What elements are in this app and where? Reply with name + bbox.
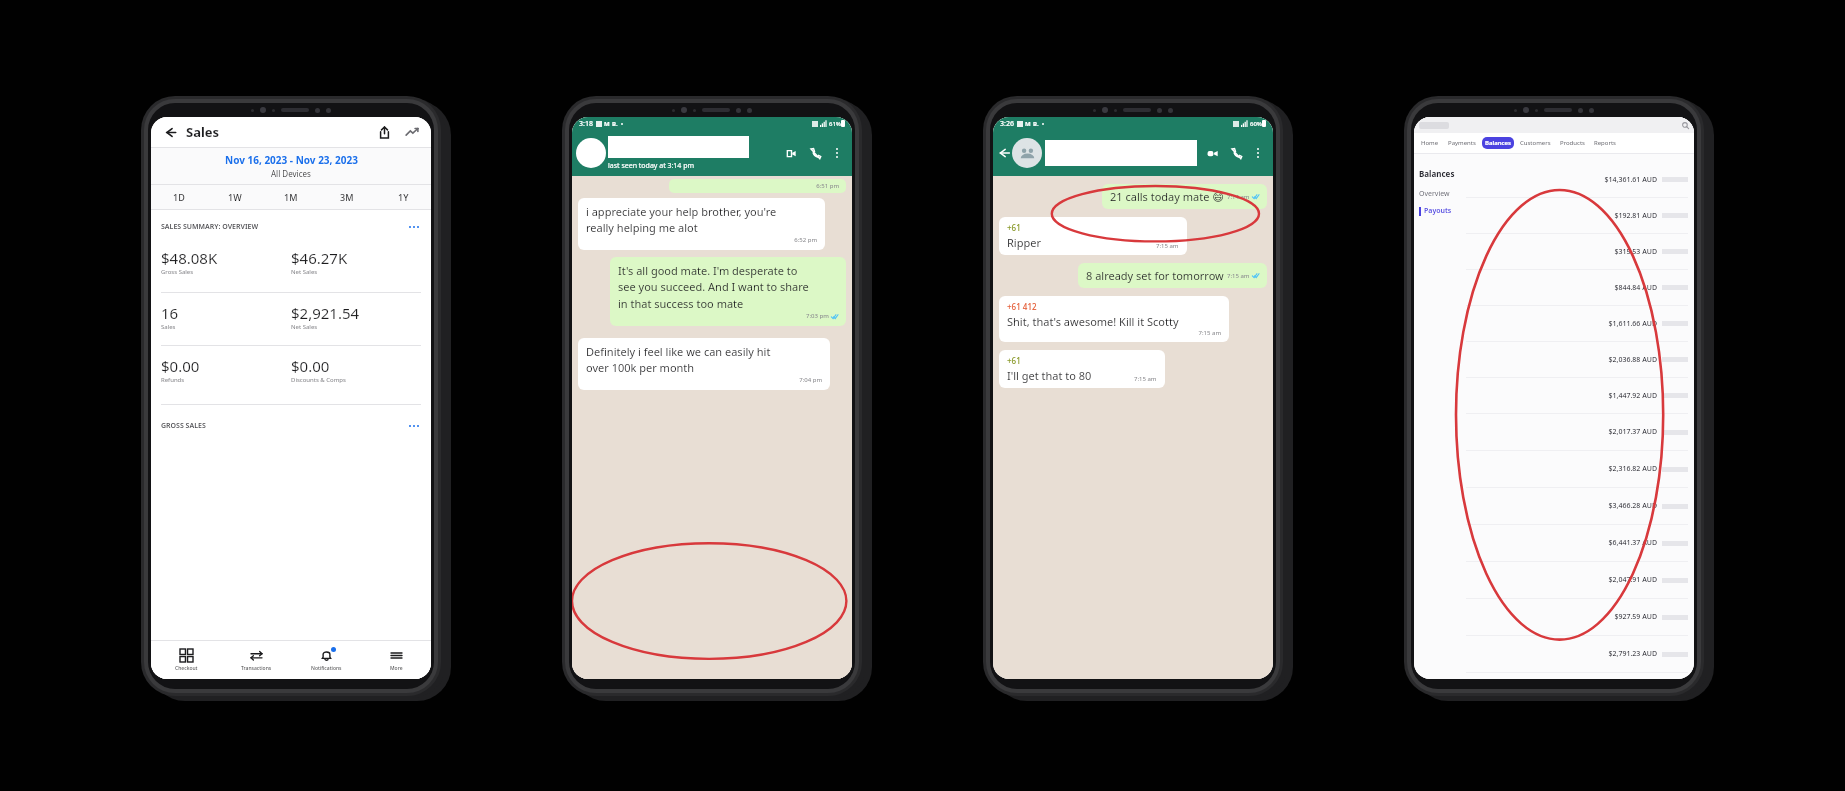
staticText: $0.00 bbox=[161, 356, 200, 376]
staticText: $2,791.23 AUD bbox=[1466, 649, 1657, 659]
button[interactable]: Payouts bbox=[1419, 206, 1466, 216]
button[interactable]: Contact avatar bbox=[576, 138, 606, 168]
staticText: 6:52 pm bbox=[586, 236, 817, 244]
staticText: $1,447.92 AUD bbox=[1466, 391, 1657, 401]
staticText: $14,361.61 AUD bbox=[1466, 175, 1657, 185]
button[interactable]: Reports bbox=[1591, 137, 1619, 149]
staticText: i appreciate your help brother, you're r… bbox=[586, 204, 777, 236]
staticText: $0.00 bbox=[291, 356, 330, 376]
button[interactable]: 1W bbox=[207, 185, 263, 209]
button[interactable]: +61 bbox=[999, 217, 1187, 255]
staticText: Ripper bbox=[1007, 235, 1041, 250]
staticText: $2,047.91 AUD bbox=[1466, 575, 1657, 585]
button[interactable]: Share bbox=[374, 122, 394, 142]
button[interactable]: $3,466.28 AUD bbox=[1466, 488, 1688, 524]
button[interactable]: Back bbox=[160, 122, 180, 142]
staticText: M bbox=[1025, 120, 1031, 128]
button[interactable]: $192.81 AUD bbox=[1466, 198, 1688, 233]
button[interactable]: Products bbox=[1557, 137, 1588, 149]
button[interactable]: $315.53 AUD bbox=[1466, 234, 1688, 269]
staticText: B. bbox=[1033, 120, 1039, 128]
staticText: Shit, that's awesome! Kill it Scotty bbox=[1007, 314, 1179, 329]
staticText: $2,316.82 AUD bbox=[1466, 464, 1657, 474]
button[interactable]: $844.84 AUD bbox=[1466, 270, 1688, 305]
button[interactable]: Transactions bbox=[221, 641, 291, 679]
button[interactable]: 1Y bbox=[375, 185, 431, 209]
button[interactable]: Checkout bbox=[151, 641, 221, 679]
button[interactable]: 21 calls today mate 😄 bbox=[1102, 184, 1267, 209]
button[interactable]: Trends bbox=[402, 122, 422, 142]
button[interactable]: 6:51 pm bbox=[669, 179, 846, 193]
staticText: $192.81 AUD bbox=[1466, 211, 1657, 221]
button[interactable]: It's all good mate. I'm desperate to see… bbox=[610, 257, 846, 326]
button[interactable]: Definitely i feel like we can easily hit… bbox=[578, 338, 830, 390]
staticText: 3M bbox=[340, 191, 354, 203]
staticText: 16 bbox=[161, 303, 179, 323]
staticText: $2,921.54 bbox=[291, 303, 360, 323]
button[interactable]: $1,447.92 AUD bbox=[1466, 378, 1688, 413]
staticText: I'll get that to 80 bbox=[1007, 368, 1092, 383]
button[interactable]: More options bbox=[407, 220, 421, 234]
button[interactable]: $14,361.61 AUD bbox=[1466, 162, 1688, 197]
staticText: $927.59 AUD bbox=[1466, 612, 1657, 622]
button[interactable]: Video call bbox=[780, 142, 802, 164]
button[interactable]: 1D bbox=[151, 185, 207, 209]
button[interactable]: $2,047.91 AUD bbox=[1466, 562, 1688, 598]
staticText: SALES SUMMARY: OVERVIEW bbox=[161, 222, 259, 232]
button[interactable]: 8 already set for tomorrow bbox=[1078, 263, 1267, 288]
staticText: $315.53 AUD bbox=[1466, 247, 1657, 257]
button[interactable]: +61 412 bbox=[999, 296, 1229, 342]
button[interactable]: Call bbox=[1225, 142, 1247, 164]
staticText: $844.84 AUD bbox=[1466, 283, 1657, 293]
staticText: 7:14 am bbox=[1227, 193, 1250, 201]
button[interactable]: Home bbox=[1418, 137, 1442, 149]
button[interactable]: Call bbox=[804, 142, 826, 164]
button[interactable]: More bbox=[361, 641, 431, 679]
button[interactable]: Back bbox=[996, 145, 1012, 161]
button[interactable]: $6,441.37 AUD bbox=[1466, 525, 1688, 561]
staticText: 7:04 pm bbox=[586, 376, 822, 384]
button[interactable]: Video call bbox=[1201, 142, 1223, 164]
staticText: Reports bbox=[1594, 139, 1616, 147]
staticText: Home bbox=[1421, 139, 1439, 147]
button[interactable]: $2,036.88 AUD bbox=[1466, 342, 1688, 377]
button[interactable]: Payments bbox=[1445, 137, 1479, 149]
staticText: 8 already set for tomorrow bbox=[1086, 268, 1224, 283]
button[interactable]: Nov 16, 2023 - Nov 23, 2023 bbox=[151, 148, 431, 184]
staticText: Products bbox=[1560, 139, 1585, 147]
button[interactable]: +61 bbox=[999, 350, 1165, 388]
button[interactable]: $2,316.82 AUD bbox=[1466, 451, 1688, 487]
staticText: 7:15 am bbox=[1227, 272, 1250, 280]
button[interactable]: 1M bbox=[263, 185, 319, 209]
button[interactable]: 3M bbox=[319, 185, 375, 209]
button[interactable]: $1,611.66 AUD bbox=[1466, 306, 1688, 341]
staticText: 60% bbox=[1250, 120, 1262, 128]
staticText: $48.08K bbox=[161, 248, 218, 268]
staticText: All Devices bbox=[271, 168, 311, 179]
button[interactable]: $927.59 AUD bbox=[1466, 599, 1688, 635]
staticText: Refunds bbox=[161, 376, 185, 384]
button[interactable]: $2,791.23 AUD bbox=[1466, 636, 1688, 672]
staticText: 1Y bbox=[398, 191, 409, 203]
button[interactable]: $2,017.37 AUD bbox=[1466, 414, 1688, 450]
staticText: Transactions bbox=[241, 665, 272, 672]
staticText: last seen today at 3:14 pm bbox=[608, 161, 695, 171]
button[interactable]: Overview bbox=[1419, 189, 1466, 199]
staticText: +61 bbox=[1007, 222, 1021, 233]
staticText: 7:15 am bbox=[1156, 242, 1179, 250]
button[interactable]: Group avatar bbox=[1012, 138, 1042, 168]
button[interactable]: More options bbox=[1249, 144, 1267, 162]
staticText: B. bbox=[612, 120, 618, 128]
staticText: Net Sales bbox=[291, 323, 318, 331]
button[interactable]: Balances bbox=[1482, 137, 1514, 149]
button[interactable]: Notifications bbox=[291, 641, 361, 679]
staticText: $3,466.28 AUD bbox=[1466, 501, 1657, 511]
staticText: Balances bbox=[1419, 168, 1455, 179]
button[interactable]: i appreciate your help brother, you're r… bbox=[578, 198, 825, 250]
staticText: M bbox=[604, 120, 610, 128]
staticText: $2,017.37 AUD bbox=[1466, 427, 1657, 437]
button[interactable]: More options bbox=[407, 419, 421, 433]
button[interactable]: More options bbox=[828, 144, 846, 162]
button[interactable]: Customers bbox=[1517, 137, 1554, 149]
staticText: $2,036.88 AUD bbox=[1466, 355, 1657, 365]
